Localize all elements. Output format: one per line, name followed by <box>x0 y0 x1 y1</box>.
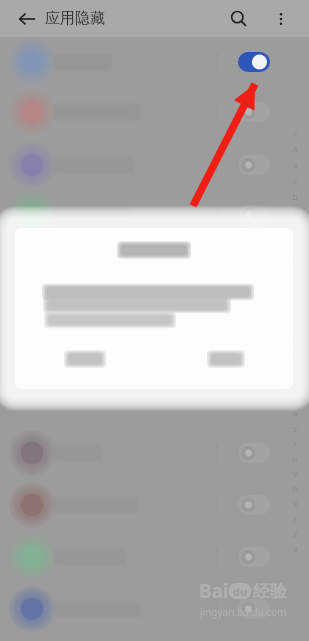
staticText: X <box>293 500 298 510</box>
staticText: M <box>292 335 299 345</box>
staticText: U <box>292 455 298 465</box>
staticText: 经验 <box>253 581 287 602</box>
button[interactable]: Cancel <box>60 346 116 372</box>
staticText: G <box>292 241 298 251</box>
button[interactable]: Confirm <box>202 346 258 372</box>
staticText: T <box>293 440 297 450</box>
staticText: Z <box>293 530 298 540</box>
button[interactable]: Back <box>8 0 45 37</box>
staticText: S <box>293 425 297 435</box>
staticText: 应用隐藏 <box>45 9 105 28</box>
staticText: N <box>292 350 298 360</box>
staticText: Y <box>293 515 297 525</box>
staticText: O <box>292 365 298 375</box>
staticText: # <box>293 545 298 555</box>
staticText: R <box>293 410 298 420</box>
staticText: Q <box>292 395 298 405</box>
staticText: V <box>293 470 298 480</box>
staticText: B <box>293 161 298 171</box>
button[interactable]: More options <box>262 0 299 37</box>
staticText: A <box>293 145 298 155</box>
staticText: H <box>292 257 298 267</box>
staticText: du <box>233 584 248 599</box>
staticText: jingyan.baidu.com <box>200 605 287 619</box>
staticText: E <box>293 209 297 219</box>
button[interactable]: Search <box>220 0 257 37</box>
staticText: W <box>292 485 299 495</box>
staticText: C <box>293 177 298 187</box>
staticText: D <box>292 193 298 203</box>
staticText: Bai <box>199 578 229 604</box>
